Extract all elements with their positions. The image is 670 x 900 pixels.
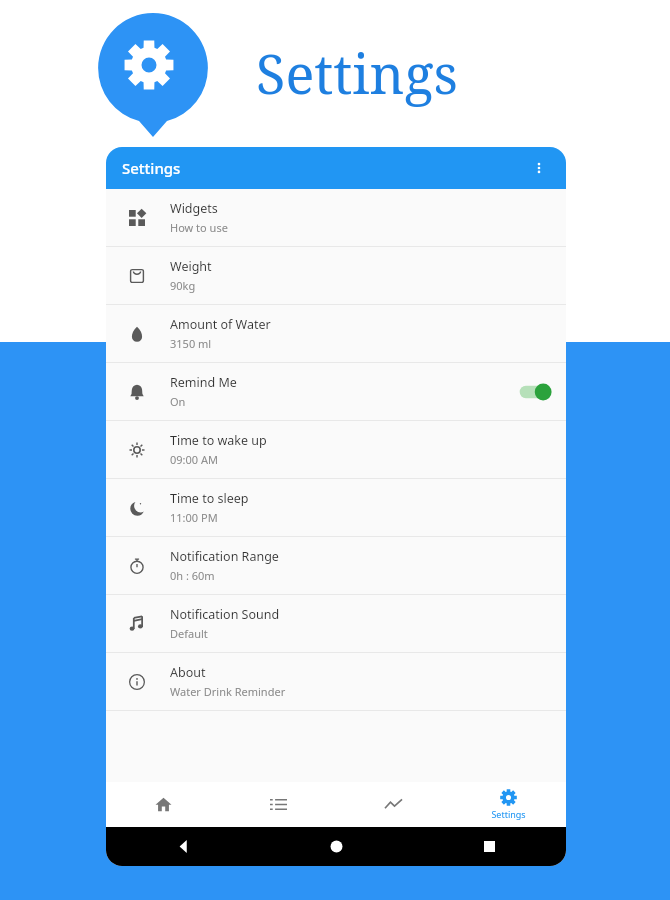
staticText: Default [170, 626, 208, 641]
staticText: Time to wake up [170, 432, 267, 449]
button[interactable]: Notification Range [106, 537, 566, 594]
staticText: 90kg [170, 278, 196, 293]
staticText: 3150 ml [170, 336, 212, 351]
staticText: Notification Sound [170, 606, 280, 623]
staticText: Settings [122, 158, 181, 178]
button[interactable]: Statistics [336, 782, 451, 827]
button[interactable]: Notification Sound [106, 595, 566, 652]
button[interactable]: History [221, 782, 336, 827]
button[interactable]: Remind Me [106, 363, 566, 420]
button[interactable]: More options [524, 153, 554, 183]
button[interactable]: Settings [451, 782, 566, 827]
staticText: Amount of Water [170, 316, 271, 333]
staticText: 11:00 PM [170, 510, 218, 525]
staticText: About [170, 664, 206, 681]
staticText: 0h : 60m [170, 568, 215, 583]
button[interactable]: Widgets [106, 189, 566, 246]
button[interactable]: Weight [106, 247, 566, 304]
staticText: Widgets [170, 200, 218, 217]
staticText: Weight [170, 258, 212, 275]
button[interactable]: About [106, 653, 566, 710]
button[interactable]: Home [106, 782, 221, 827]
staticText: On [170, 394, 186, 409]
staticText: How to use [170, 220, 228, 235]
staticText: Water Drink Reminder [170, 684, 286, 699]
button[interactable]: Time to sleep [106, 479, 566, 536]
staticText: Remind Me [170, 374, 237, 391]
button[interactable]: Amount of Water [106, 305, 566, 362]
staticText: Time to sleep [170, 490, 249, 507]
staticText: Notification Range [170, 548, 279, 565]
staticText: Settings [256, 36, 458, 110]
staticText: 09:00 AM [170, 452, 218, 467]
button[interactable]: Time to wake up [106, 421, 566, 478]
staticText: Settings [491, 808, 526, 820]
